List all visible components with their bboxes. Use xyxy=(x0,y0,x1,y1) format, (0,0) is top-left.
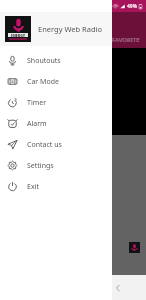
staticText: Alarm xyxy=(27,119,47,129)
staticText: Car Mode xyxy=(27,77,59,87)
button[interactable]: Alarm xyxy=(0,113,112,134)
button[interactable]: Back xyxy=(108,278,128,298)
staticText: Shoutouts xyxy=(27,56,61,66)
staticText: ENERGY xyxy=(11,33,26,37)
button[interactable]: Contact us xyxy=(0,134,112,155)
button[interactable]: Car Mode xyxy=(0,71,112,92)
staticText: Timer xyxy=(27,98,47,108)
button[interactable]: ENERGY xyxy=(0,12,112,46)
staticText: Exit xyxy=(27,182,39,192)
button[interactable]: Shoutouts xyxy=(0,50,112,71)
button[interactable]: Timer xyxy=(0,92,112,113)
staticText: Energy Web Radio xyxy=(38,24,103,34)
staticText: FAVORITE xyxy=(112,36,140,44)
button[interactable] xyxy=(129,242,140,253)
button[interactable]: Exit xyxy=(0,176,112,197)
staticText: 49% xyxy=(127,3,137,10)
staticText: Settings xyxy=(27,161,54,171)
staticText: Contact us xyxy=(27,140,62,150)
button[interactable]: Settings xyxy=(0,155,112,176)
